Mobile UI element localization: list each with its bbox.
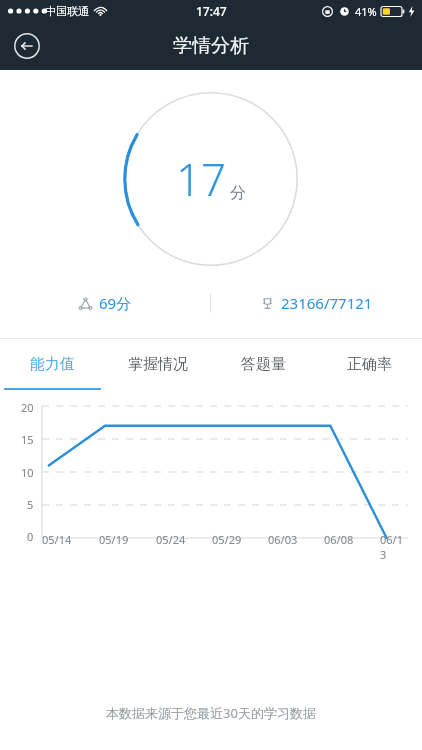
staticText: 06/13 [380, 532, 408, 562]
staticText: 06/08 [324, 532, 354, 547]
staticText: 20 [21, 400, 34, 415]
staticText: 17 [176, 149, 227, 209]
button[interactable]: 69分 [0, 286, 210, 320]
staticText: 15 [21, 432, 34, 447]
button[interactable]: 掌握情况 [105, 339, 210, 390]
staticText: 正确率 [347, 355, 392, 374]
button[interactable]: 能力值 [0, 339, 105, 390]
staticText: 答题量 [241, 355, 286, 374]
staticText: 17:47 [196, 3, 227, 19]
staticText: 掌握情况 [128, 355, 188, 374]
staticText: 10 [21, 465, 34, 480]
button[interactable]: 答题量 [210, 339, 316, 390]
staticText: 06/03 [268, 532, 298, 547]
button[interactable]: 正确率 [316, 339, 422, 390]
button[interactable]: Back [8, 27, 46, 65]
staticText: 05/29 [212, 532, 242, 547]
staticText: 分 [230, 183, 246, 203]
button[interactable]: 23166/77121 [211, 286, 422, 320]
staticText: 05/14 [42, 532, 72, 547]
staticText: 05/19 [99, 532, 129, 547]
staticText: 本数据来源于您最近30天的学习数据 [0, 704, 422, 722]
staticText: 中国联通 [45, 4, 89, 18]
staticText: 05/24 [156, 532, 186, 547]
staticText: 41% [355, 4, 377, 19]
staticText: 学情分析 [173, 34, 249, 58]
staticText: 69分 [99, 293, 132, 313]
staticText: 5 [27, 497, 34, 512]
staticText: 能力值 [30, 355, 75, 374]
staticText: 23166/77121 [281, 293, 373, 313]
staticText: 0 [27, 529, 34, 544]
